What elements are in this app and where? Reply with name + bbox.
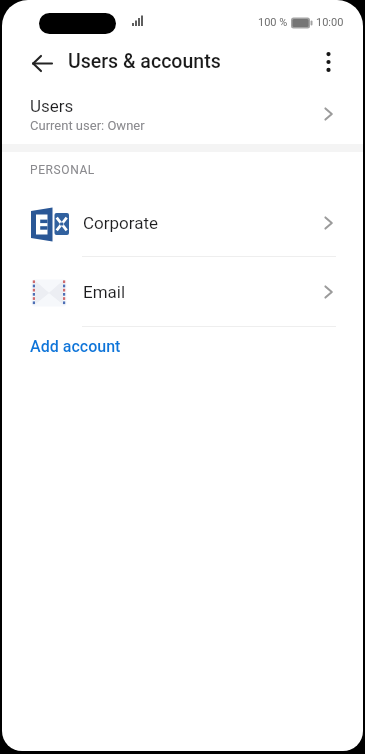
staticText: Users (30, 96, 74, 116)
button[interactable]: Add account (2, 327, 121, 356)
staticText: Email (83, 282, 126, 302)
button[interactable]: Corporate (2, 190, 363, 256)
staticText: Add account (30, 337, 121, 356)
staticText: 10:00 (316, 16, 344, 29)
staticText: PERSONAL (30, 163, 95, 177)
button[interactable] (26, 48, 58, 80)
staticText: Users & accounts (68, 50, 221, 73)
button[interactable] (314, 50, 342, 78)
staticText: 100 % (258, 16, 288, 29)
button[interactable]: Email (2, 257, 363, 326)
staticText: Current user: Owner (30, 118, 145, 133)
staticText: Corporate (83, 213, 159, 233)
button[interactable]: Users (2, 84, 363, 144)
